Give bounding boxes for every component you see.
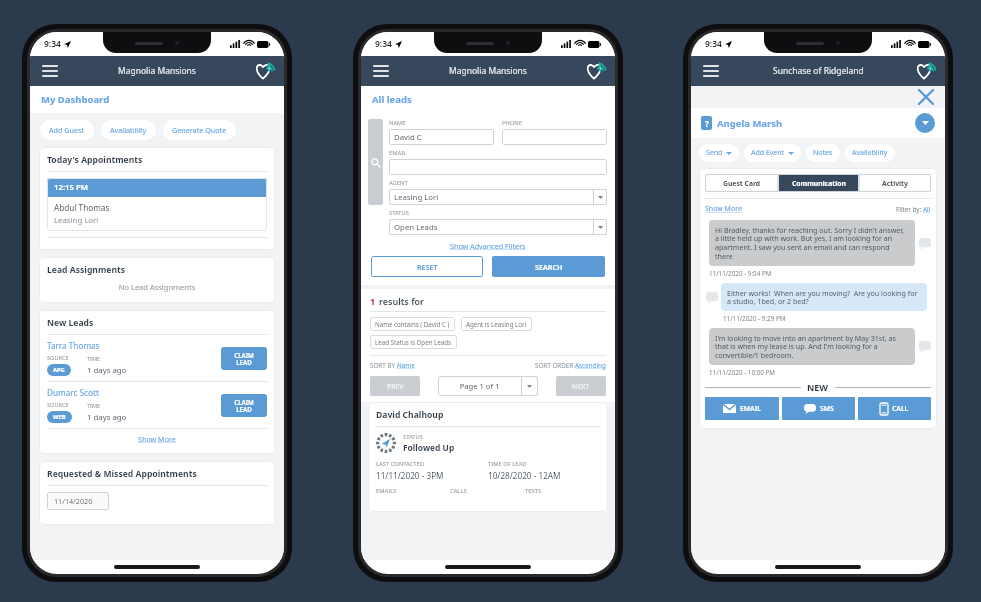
button[interactable]: Send bbox=[699, 144, 739, 162]
button[interactable]: SEARCH bbox=[492, 256, 605, 277]
button[interactable]: Expand bbox=[915, 113, 935, 133]
staticText: results for bbox=[379, 295, 424, 307]
staticText: CLAIM LEAD bbox=[234, 351, 254, 367]
staticText: TIME bbox=[87, 402, 101, 410]
button[interactable]: EMAIL bbox=[705, 397, 779, 420]
staticText: I'm looking to move into an apartment by… bbox=[715, 333, 909, 360]
button[interactable]: CLAIM LEAD bbox=[221, 394, 267, 417]
button[interactable]: Activity bbox=[859, 174, 931, 192]
staticText: Page 1 of 1 bbox=[438, 381, 521, 391]
staticText: Show Advanced Filters bbox=[450, 241, 526, 251]
staticText: AGENT bbox=[389, 179, 408, 187]
button[interactable]: Generate Quote bbox=[163, 120, 236, 140]
button[interactable]: CLAIM LEAD bbox=[221, 347, 267, 370]
staticText: SOURCE bbox=[47, 401, 69, 409]
staticText: Either works! When are you moving? Are y… bbox=[727, 288, 921, 306]
button[interactable]: Menu bbox=[40, 61, 60, 81]
staticText: Followed Up bbox=[403, 442, 455, 453]
staticText: Communication bbox=[792, 179, 846, 188]
staticText: Tarra Thomas bbox=[47, 340, 100, 351]
button[interactable]: Show More bbox=[47, 434, 267, 444]
staticText: Send bbox=[706, 148, 723, 158]
button[interactable]: PREV bbox=[370, 376, 420, 396]
staticText: Open Leads bbox=[394, 222, 593, 233]
button[interactable]: Show Advanced Filters bbox=[450, 241, 526, 251]
staticText: New Leads bbox=[47, 317, 94, 329]
button[interactable]: Add Event bbox=[744, 144, 801, 162]
staticText: Leasing Lori bbox=[394, 192, 593, 203]
button[interactable]: CALL bbox=[858, 397, 931, 420]
button[interactable]: Page 1 of 1 bbox=[438, 376, 538, 396]
staticText: 1 bbox=[370, 295, 376, 307]
staticText: My Dashboard bbox=[41, 93, 110, 106]
staticText: CLAIM LEAD bbox=[234, 398, 254, 414]
button[interactable]: Search bbox=[368, 119, 383, 205]
button[interactable]: Leasing Lori bbox=[389, 189, 607, 205]
staticText: CALLS bbox=[450, 487, 467, 495]
button[interactable] bbox=[389, 159, 607, 175]
button[interactable]: 11/14/2020 bbox=[47, 492, 109, 510]
staticText: David C bbox=[394, 132, 422, 143]
staticText: Sunchase of Ridgeland bbox=[773, 65, 864, 77]
staticText: Hi Bradley, thanks for reaching out. Sor… bbox=[715, 225, 909, 261]
staticText: SOURCE bbox=[47, 354, 69, 362]
staticText: 9:34 bbox=[705, 38, 722, 50]
button[interactable]: Add Guest bbox=[40, 120, 94, 140]
button[interactable]: Name contains ( David C ) bbox=[370, 317, 455, 331]
staticText: 1 days ago bbox=[87, 412, 127, 423]
staticText: Activity bbox=[882, 179, 908, 188]
button[interactable]: Show More bbox=[705, 204, 742, 214]
button[interactable]: NEXT bbox=[556, 376, 606, 396]
button[interactable]: Tarra Thomas bbox=[47, 335, 267, 381]
button[interactable]: Agent is Leasing Lori bbox=[461, 317, 532, 331]
staticText: PREV bbox=[387, 382, 404, 391]
button[interactable]: Menu bbox=[701, 61, 721, 81]
staticText: No Lead Assignments bbox=[47, 282, 267, 292]
staticText: Lead Status is Open Leads bbox=[375, 338, 452, 346]
button[interactable]: Name bbox=[397, 361, 415, 370]
button[interactable]: David C bbox=[389, 129, 494, 145]
button[interactable]: Guest Card bbox=[705, 174, 778, 192]
button[interactable]: Availability bbox=[845, 144, 895, 162]
staticText: 12:15 PM bbox=[54, 182, 89, 193]
staticText: Add Guest bbox=[49, 125, 85, 135]
staticText: Availability bbox=[852, 148, 888, 158]
staticText: Today's Appointments bbox=[47, 154, 143, 166]
button[interactable]: Logo bbox=[253, 60, 275, 82]
staticText: Dumarc Scott bbox=[47, 387, 99, 398]
staticText: WEB bbox=[53, 413, 66, 421]
staticText: Name bbox=[397, 361, 415, 370]
staticText: Agent is Leasing Lori bbox=[466, 320, 527, 328]
staticText: SMS bbox=[820, 404, 834, 413]
staticText: 11/11/2020 - 3PM bbox=[376, 470, 444, 481]
staticText: EMAIL bbox=[740, 404, 761, 413]
button[interactable]: RESET bbox=[371, 256, 483, 277]
button[interactable]: Close bbox=[917, 88, 935, 106]
button[interactable]: Menu bbox=[371, 61, 391, 81]
button[interactable]: Ascending bbox=[575, 361, 606, 370]
button[interactable]: All bbox=[923, 205, 931, 214]
staticText: STATUS bbox=[389, 209, 409, 217]
button[interactable]: Availability bbox=[101, 120, 156, 140]
button[interactable]: SMS bbox=[782, 397, 855, 420]
staticText: 11/11/2020 - 9:29 PM bbox=[723, 314, 786, 323]
staticText: SORT BY bbox=[370, 361, 397, 370]
staticText: Generate Quote bbox=[172, 125, 227, 135]
staticText: APG bbox=[53, 366, 65, 374]
staticText: TIME bbox=[87, 355, 101, 363]
staticText: NEW bbox=[807, 381, 829, 393]
staticText: TEXTS bbox=[525, 487, 542, 495]
staticText: Guest Card bbox=[723, 179, 761, 188]
button[interactable]: Communication bbox=[778, 174, 859, 192]
button[interactable]: Open Leads bbox=[389, 219, 607, 235]
button[interactable]: Logo bbox=[914, 60, 936, 82]
button[interactable]: Lead Status is Open Leads bbox=[370, 335, 457, 349]
button[interactable]: Dumarc Scott bbox=[47, 382, 267, 428]
button[interactable]: 12:15 PM bbox=[47, 178, 267, 231]
button[interactable]: Logo bbox=[584, 60, 606, 82]
button[interactable] bbox=[502, 129, 607, 145]
staticText: NEXT bbox=[572, 382, 590, 391]
staticText: CALL bbox=[892, 404, 909, 413]
button[interactable]: Notes bbox=[806, 144, 840, 162]
staticText: SORT ORDER bbox=[535, 361, 575, 370]
